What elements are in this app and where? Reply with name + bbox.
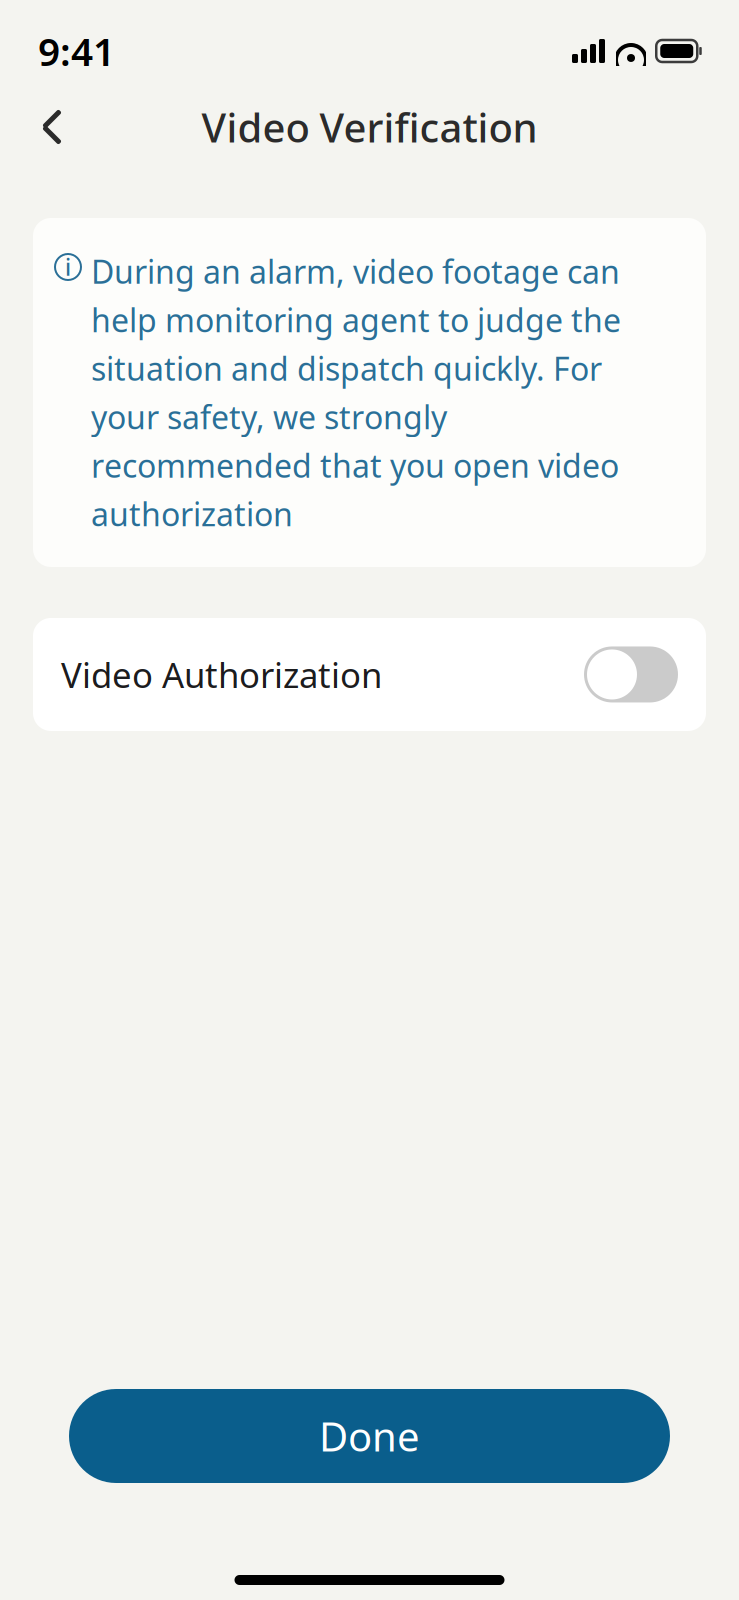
button[interactable]: Back — [24, 99, 80, 155]
staticText: Video Verification — [201, 100, 537, 153]
staticText: 9:41 — [38, 25, 115, 77]
button[interactable]: Video Authorization — [33, 618, 706, 731]
button[interactable]: Done — [69, 1389, 670, 1483]
staticText: During an alarm, video footage can help … — [91, 250, 621, 535]
staticText: i — [65, 252, 71, 282]
staticText: Done — [319, 1409, 420, 1462]
staticText: Video Authorization — [61, 651, 382, 697]
